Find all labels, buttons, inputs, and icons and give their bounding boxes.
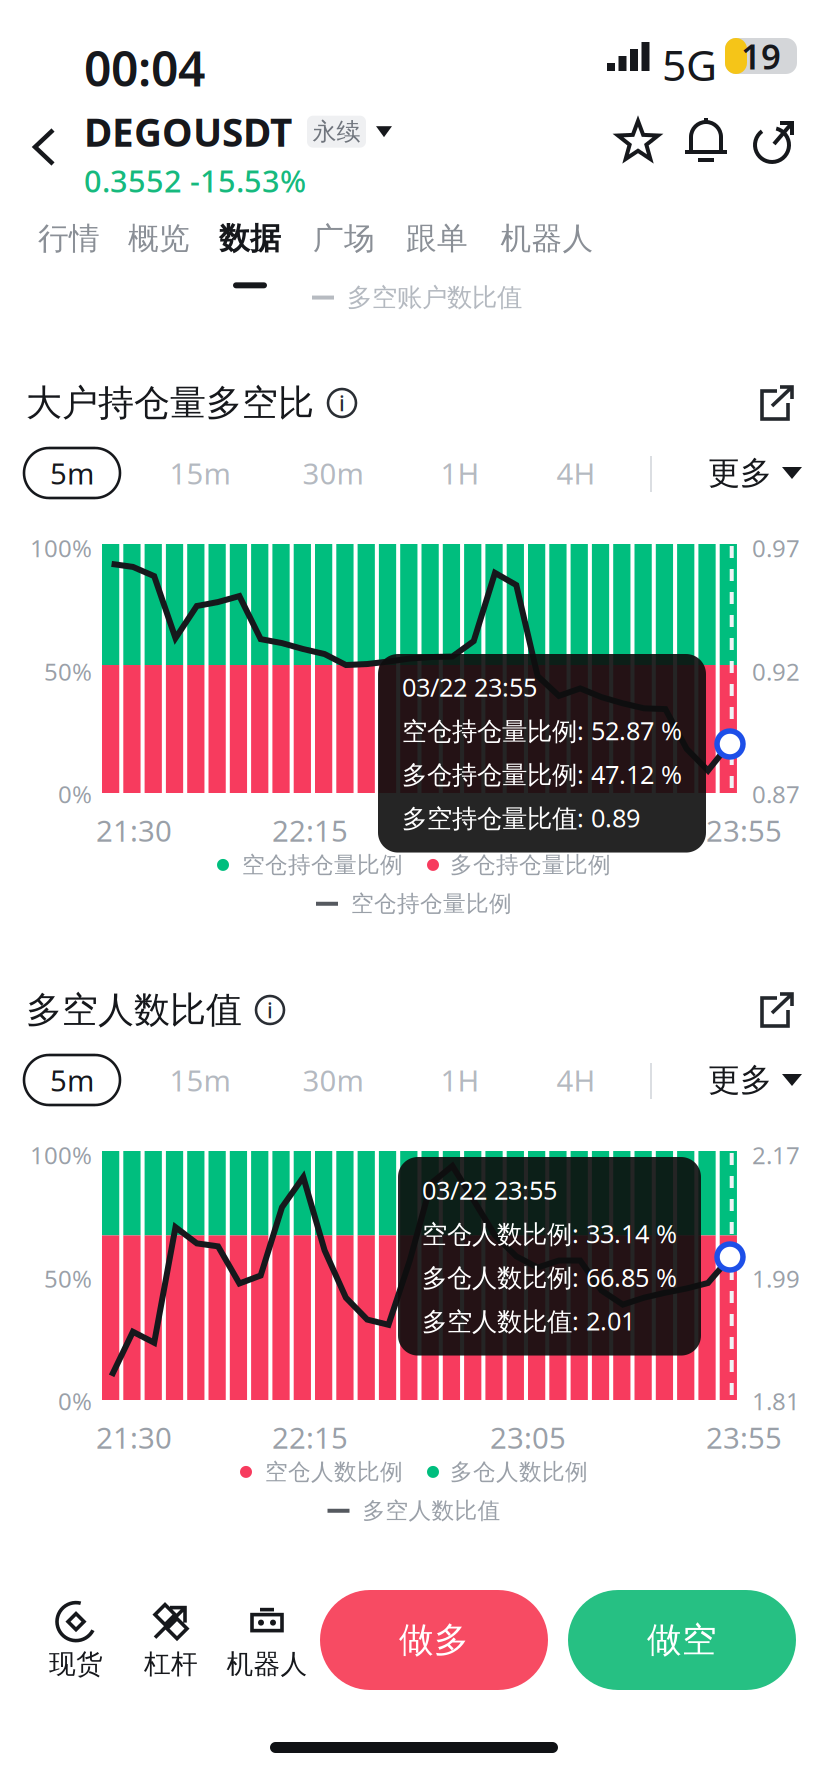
button[interactable]: 跟单 xyxy=(379,218,495,290)
button[interactable]: 30m xyxy=(285,448,381,498)
staticText: 5m xyxy=(50,453,94,492)
staticText: 多空人数比值: 2.01 xyxy=(422,1304,635,1337)
staticText: 做多 xyxy=(399,1619,469,1661)
button[interactable]: 概览 xyxy=(101,218,217,290)
button[interactable]: 机器人 xyxy=(489,218,605,290)
staticText: i xyxy=(267,996,273,1024)
staticText: 空仓持仓量比例 xyxy=(242,851,403,879)
staticText: 数据 xyxy=(219,220,281,257)
staticText: i xyxy=(339,389,345,417)
staticText: 1.99 xyxy=(752,1262,800,1294)
staticText: 5G xyxy=(662,36,717,93)
button[interactable]: 4H xyxy=(528,448,624,498)
staticText: 跟单 xyxy=(406,220,468,257)
staticText: 多空账户数比值 xyxy=(347,282,522,313)
button[interactable]: 1H xyxy=(412,448,508,498)
staticText: 机器人 xyxy=(500,220,593,257)
staticText: 多空人数比值 xyxy=(362,1497,500,1525)
button[interactable]: 4H xyxy=(528,1055,624,1105)
staticText: 4H xyxy=(556,453,595,492)
button[interactable]: 行情 xyxy=(11,218,127,290)
staticText: 19 xyxy=(741,33,781,79)
button[interactable]: 更多 xyxy=(696,1055,814,1105)
button[interactable]: Share xyxy=(740,106,808,176)
button[interactable]: 15m xyxy=(152,1055,248,1105)
staticText: 1.81 xyxy=(752,1385,800,1417)
staticText: 永续 xyxy=(312,117,360,146)
staticText: 23:05 xyxy=(490,1418,566,1457)
staticText: 0% xyxy=(58,778,92,810)
staticText: 广场 xyxy=(313,220,375,257)
button[interactable]: 数据 xyxy=(192,218,308,290)
button[interactable]: 现货 xyxy=(26,1593,126,1689)
staticText: 1H xyxy=(440,1060,479,1099)
staticText: 多空持仓量比值: 0.89 xyxy=(402,801,640,834)
staticText: 2.17 xyxy=(752,1139,800,1171)
staticText: 杠杆 xyxy=(144,1648,198,1680)
staticText: 03/22 23:55 xyxy=(422,1173,557,1207)
staticText: 15m xyxy=(169,1060,230,1099)
staticText: 100% xyxy=(30,532,92,564)
button[interactable]: 做多 xyxy=(320,1590,548,1690)
staticText: 30m xyxy=(302,453,363,492)
staticText: 21:30 xyxy=(96,811,172,850)
staticText: DEGOUSDT xyxy=(84,106,292,157)
staticText: 多仓持仓量比例 xyxy=(450,851,611,879)
staticText: 1H xyxy=(440,453,479,492)
button[interactable]: 杠杆 xyxy=(121,1593,221,1689)
staticText: 22:15 xyxy=(272,811,348,850)
staticText: 多仓人数比例 xyxy=(450,1458,588,1486)
staticText: 50% xyxy=(44,1262,92,1294)
staticText: 空仓持仓量比例 xyxy=(351,890,512,918)
staticText: 行情 xyxy=(38,220,100,257)
staticText: 100% xyxy=(30,1139,92,1171)
staticText: 现货 xyxy=(49,1648,103,1680)
button[interactable]: 更多 xyxy=(696,448,814,498)
staticText: 00:04 xyxy=(84,36,205,100)
staticText: 0.87 xyxy=(752,778,800,810)
staticText: 空仓人数比例: 33.14 % xyxy=(422,1217,677,1250)
staticText: 更多 xyxy=(708,453,772,493)
staticText: 更多 xyxy=(708,1060,772,1100)
staticText: 50% xyxy=(44,655,92,687)
staticText: 0.97 xyxy=(752,532,800,564)
staticText: 做空 xyxy=(647,1619,717,1661)
button[interactable]: Expand chart xyxy=(746,983,804,1037)
staticText: 0.3552 -15.53% xyxy=(84,160,306,201)
staticText: 0% xyxy=(58,1385,92,1417)
button[interactable]: 广场 xyxy=(286,218,402,290)
staticText: 概览 xyxy=(128,220,190,257)
staticText: 22:15 xyxy=(272,1418,348,1457)
staticText: 21:30 xyxy=(96,1418,172,1457)
staticText: 空仓人数比例 xyxy=(265,1458,403,1486)
staticText: 30m xyxy=(302,1060,363,1099)
staticText: 0.92 xyxy=(752,655,800,687)
staticText: 23:55 xyxy=(706,1418,782,1457)
staticText: 15m xyxy=(169,453,230,492)
button[interactable]: Favorite xyxy=(604,106,672,176)
button[interactable]: 5m xyxy=(24,1055,120,1105)
staticText: 5m xyxy=(50,1060,94,1099)
staticText: 03/22 23:55 xyxy=(402,670,537,704)
button[interactable]: 5m xyxy=(24,448,120,498)
button[interactable]: 做空 xyxy=(568,1590,796,1690)
button[interactable]: Back xyxy=(8,110,80,184)
button[interactable]: 1H xyxy=(412,1055,508,1105)
staticText: 23:55 xyxy=(706,811,782,850)
button[interactable]: 30m xyxy=(285,1055,381,1105)
staticText: 多空人数比值 xyxy=(26,988,242,1032)
button[interactable]: 15m xyxy=(152,448,248,498)
button[interactable]: Expand chart xyxy=(746,376,804,430)
staticText: 4H xyxy=(556,1060,595,1099)
staticText: 空仓持仓量比例: 52.87 % xyxy=(402,714,682,747)
button[interactable]: 机器人 xyxy=(212,1593,322,1689)
button[interactable]: Alerts xyxy=(672,106,740,176)
staticText: 机器人 xyxy=(226,1648,307,1680)
staticText: 多仓持仓量比例: 47.12 % xyxy=(402,757,682,791)
staticText: 大户持仓量多空比 xyxy=(26,381,314,425)
staticText: 多仓人数比例: 66.85 % xyxy=(422,1260,677,1294)
